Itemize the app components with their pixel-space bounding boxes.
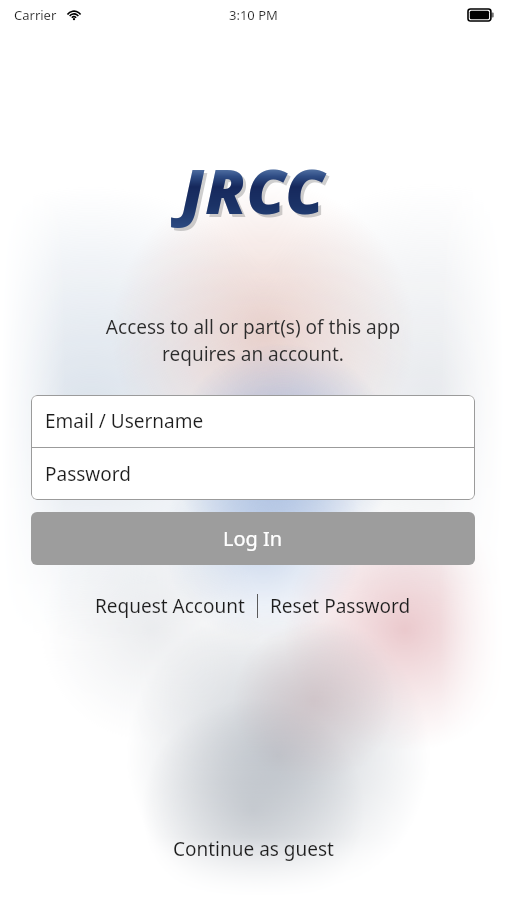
button[interactable]: Email / Username [31, 395, 475, 447]
staticText: 3:10 PM [229, 6, 278, 24]
staticText: JRCC [181, 148, 326, 232]
staticText: Continue as guest [173, 836, 334, 862]
button[interactable]: Reset Password [258, 587, 423, 625]
staticText: Carrier [14, 6, 57, 24]
button[interactable]: Request Account [83, 587, 257, 625]
button[interactable]: Continue as guest [153, 828, 354, 870]
staticText: Reset Password [270, 593, 411, 619]
staticText: Password [45, 461, 131, 487]
button[interactable]: Log In [31, 512, 475, 565]
staticText: JRCC [184, 151, 329, 235]
staticText: Access to all or part(s) of this app req… [24, 314, 482, 367]
staticText: Email / Username [45, 408, 204, 434]
staticText: Log In [223, 525, 283, 552]
button[interactable]: Password [31, 448, 475, 500]
staticText: Request Account [95, 593, 245, 619]
